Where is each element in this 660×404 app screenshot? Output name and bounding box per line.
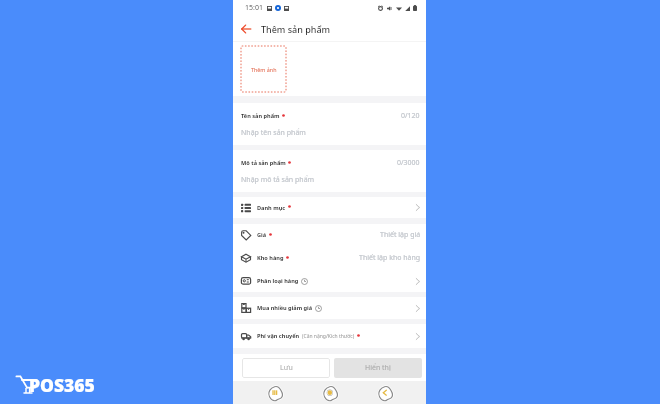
button[interactable]: Tên sản phẩm bbox=[233, 103, 426, 145]
staticText: 0/3000 bbox=[397, 158, 420, 168]
button[interactable]: Home bbox=[320, 383, 340, 403]
staticText: Kho hàng bbox=[257, 254, 284, 262]
button[interactable]: Recent apps bbox=[265, 383, 285, 403]
staticText: Lưu bbox=[280, 363, 293, 373]
button[interactable]: Mua nhiều giảm giá bbox=[233, 297, 426, 319]
button[interactable]: Thêm ảnh bbox=[241, 46, 286, 92]
staticText: Mua nhiều giảm giá bbox=[257, 304, 313, 312]
staticText: (Cân nặng/Kích thước) bbox=[302, 333, 355, 340]
button[interactable]: Back bbox=[375, 383, 395, 403]
staticText: Phân loại hàng bbox=[257, 277, 299, 285]
button[interactable]: Hiển thị bbox=[334, 358, 422, 378]
staticText: Hiển thị bbox=[365, 363, 391, 373]
staticText: POS365 bbox=[29, 373, 95, 397]
staticText: Thiết lập kho hàng bbox=[359, 253, 421, 263]
staticText: Thêm sản phẩm bbox=[261, 23, 331, 35]
button[interactable]: Phân loại hàng bbox=[233, 270, 426, 292]
staticText: 15:01 bbox=[245, 3, 263, 13]
staticText: Phí vận chuyển bbox=[257, 332, 300, 340]
button[interactable]: Mô tả sản phẩm bbox=[233, 150, 426, 192]
staticText: 0/120 bbox=[401, 111, 420, 121]
staticText: Giá bbox=[257, 231, 267, 239]
button[interactable]: Giá bbox=[233, 224, 426, 246]
button[interactable]: Phí vận chuyển bbox=[233, 324, 426, 348]
button[interactable]: Lưu bbox=[242, 358, 330, 378]
button[interactable]: Danh mục bbox=[233, 197, 426, 218]
button[interactable]: Kho hàng bbox=[233, 246, 426, 270]
staticText: Mô tả sản phẩm bbox=[241, 159, 286, 167]
staticText: Thiết lập giá bbox=[380, 230, 421, 240]
staticText: Tên sản phẩm bbox=[241, 112, 280, 120]
staticText: Danh mục bbox=[257, 204, 286, 212]
staticText: Nhập mô tả sản phẩm bbox=[241, 175, 315, 185]
staticText: Thêm ảnh bbox=[251, 66, 277, 73]
button[interactable]: Back bbox=[238, 21, 254, 37]
staticText: Nhập tên sản phẩm bbox=[241, 128, 306, 138]
